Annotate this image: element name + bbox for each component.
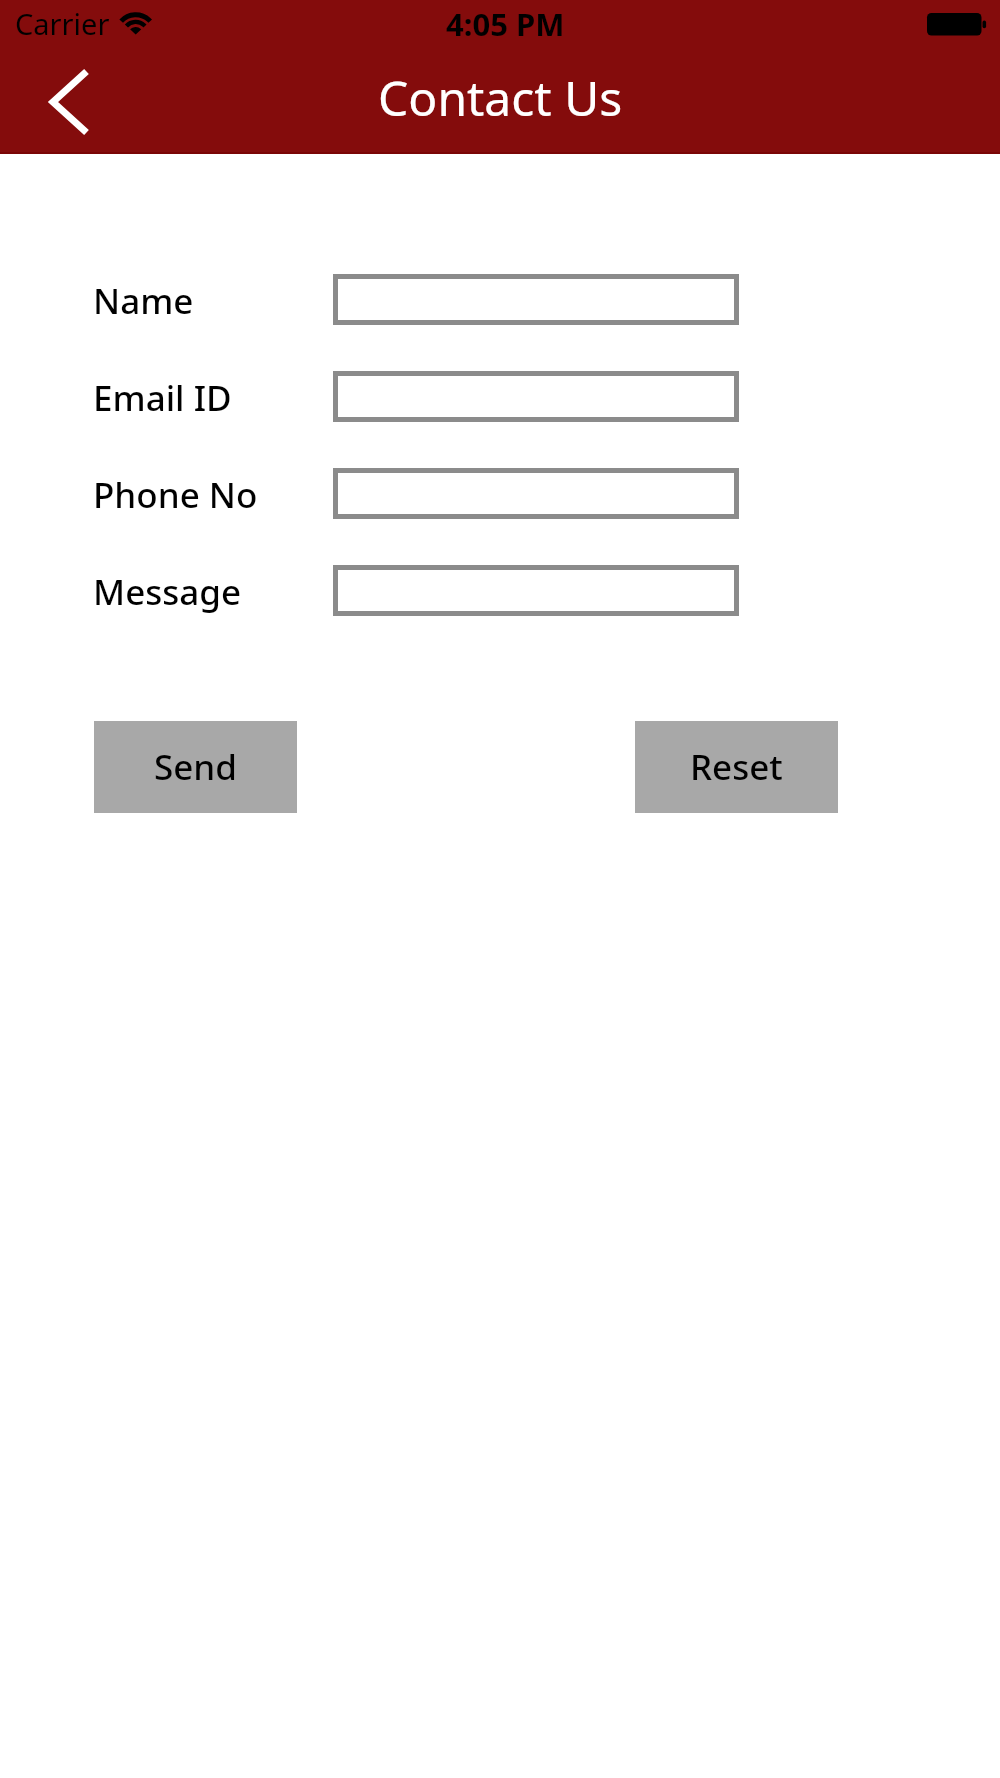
button[interactable]: Send [94, 721, 297, 813]
staticText: Reset [690, 743, 783, 791]
button[interactable]: Email ID input field [333, 371, 739, 422]
staticText: Send [154, 743, 237, 791]
other: Battery full [927, 13, 987, 36]
staticText: Carrier [15, 4, 110, 43]
button[interactable]: Back [20, 50, 116, 146]
staticText: Name [93, 277, 194, 325]
button[interactable]: Phone No input field [333, 468, 739, 519]
button[interactable]: Name input field [333, 274, 739, 325]
button[interactable]: Message input field [333, 565, 739, 616]
staticText: Contact Us [378, 65, 623, 130]
staticText: Phone No [93, 471, 258, 519]
button[interactable]: Reset [635, 721, 838, 813]
staticText: 4:05 PM [446, 3, 565, 45]
staticText: Email ID [93, 374, 232, 422]
staticText: Message [93, 568, 242, 616]
